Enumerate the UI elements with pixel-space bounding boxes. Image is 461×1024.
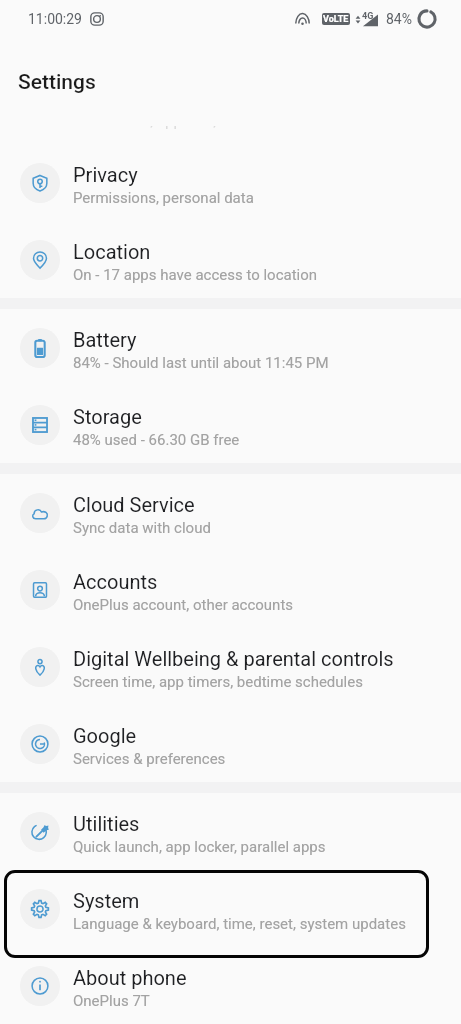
button[interactable]: Accounts [0,551,461,628]
staticText: Google [73,724,137,747]
button[interactable]: Privacy [0,144,461,221]
button[interactable]: Battery [0,309,461,386]
staticText: Settings [18,70,96,95]
staticText: Storage [73,405,142,428]
other: Battery [418,10,436,28]
staticText: About phone [73,966,187,989]
staticText: Language & keyboard, time, reset, system… [73,915,406,933]
staticText: OnePlus account, other accounts [73,596,294,614]
staticText: 4G [362,11,374,22]
staticText: On - 17 apps have access to location [73,266,318,284]
staticText: 84% - Should last until about 11:45 PM [73,354,329,372]
staticText: OnePlus 7T [73,992,150,1010]
button[interactable]: Utilities [0,793,461,870]
staticText: 11:00:29 [28,11,82,27]
other: Data transfer [355,13,361,26]
button[interactable]: About phone [0,947,461,1024]
button[interactable]: Digital Wellbeing & parental controls [0,628,461,705]
staticText: Quick launch, app locker, parallel apps [73,838,326,856]
staticText: Utilities [73,812,140,835]
other: Hotspot [295,13,310,26]
button[interactable]: System [0,870,461,947]
staticText: Cloud Service [73,493,195,516]
staticText: Screen time, app timers, bedtime schedul… [73,673,363,691]
staticText: Accounts [73,570,158,593]
staticText: Battery [73,328,137,351]
staticText: System [73,889,140,912]
staticText: Permissions, personal data [73,189,254,207]
staticText: Location [73,240,151,263]
button[interactable]: Location [0,221,461,298]
staticText: Privacy [73,163,138,186]
button[interactable]: Google [0,705,461,782]
staticText: Security & lock screen [73,86,269,109]
staticText: Services & preferences [73,750,226,768]
staticText: Sync data with cloud [73,519,211,537]
other: Instagram [90,12,104,26]
staticText: 84% [386,11,412,27]
staticText: 48% used - 66.30 GB free [73,431,240,449]
staticText: VoLTE [323,14,349,25]
staticText: Digital Wellbeing & parental controls [73,647,394,670]
button[interactable]: Storage [0,386,461,463]
other: Mobile signal 4G [362,11,378,27]
button[interactable]: Cloud Service [0,474,461,551]
button[interactable]: Security & lock screen [0,67,461,144]
